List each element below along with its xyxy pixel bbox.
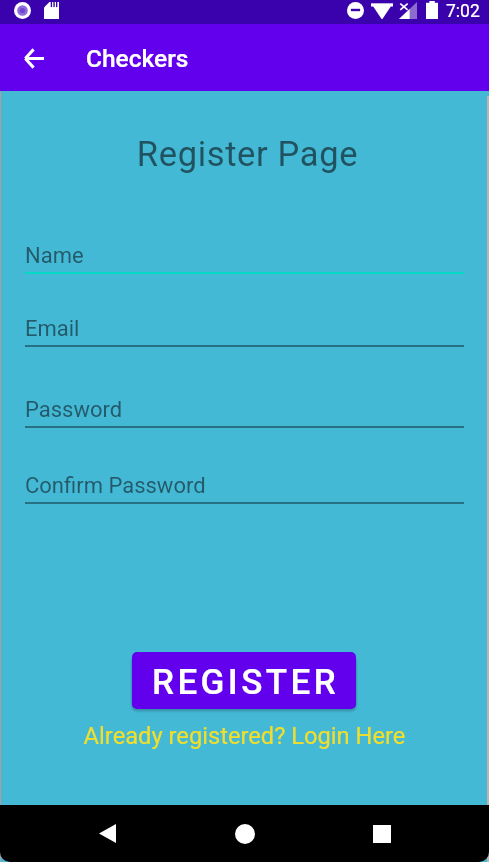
- staticText: 7:02: [446, 1, 480, 22]
- staticText: Email: [25, 316, 80, 342]
- staticText: REGISTER: [152, 662, 340, 703]
- button[interactable]: REGISTER: [132, 652, 356, 709]
- staticText: Password: [25, 397, 123, 423]
- button[interactable]: Navigate up: [10, 34, 58, 82]
- button[interactable]: Back: [79, 805, 136, 862]
- button[interactable]: Already registered? Login Here: [0, 722, 489, 750]
- staticText: Name: [25, 243, 84, 269]
- staticText: Register Page: [3, 134, 489, 174]
- staticText: Confirm Password: [25, 473, 206, 499]
- staticText: Checkers: [86, 44, 189, 73]
- button[interactable]: Home: [216, 805, 273, 862]
- button[interactable]: Recent apps: [353, 805, 410, 862]
